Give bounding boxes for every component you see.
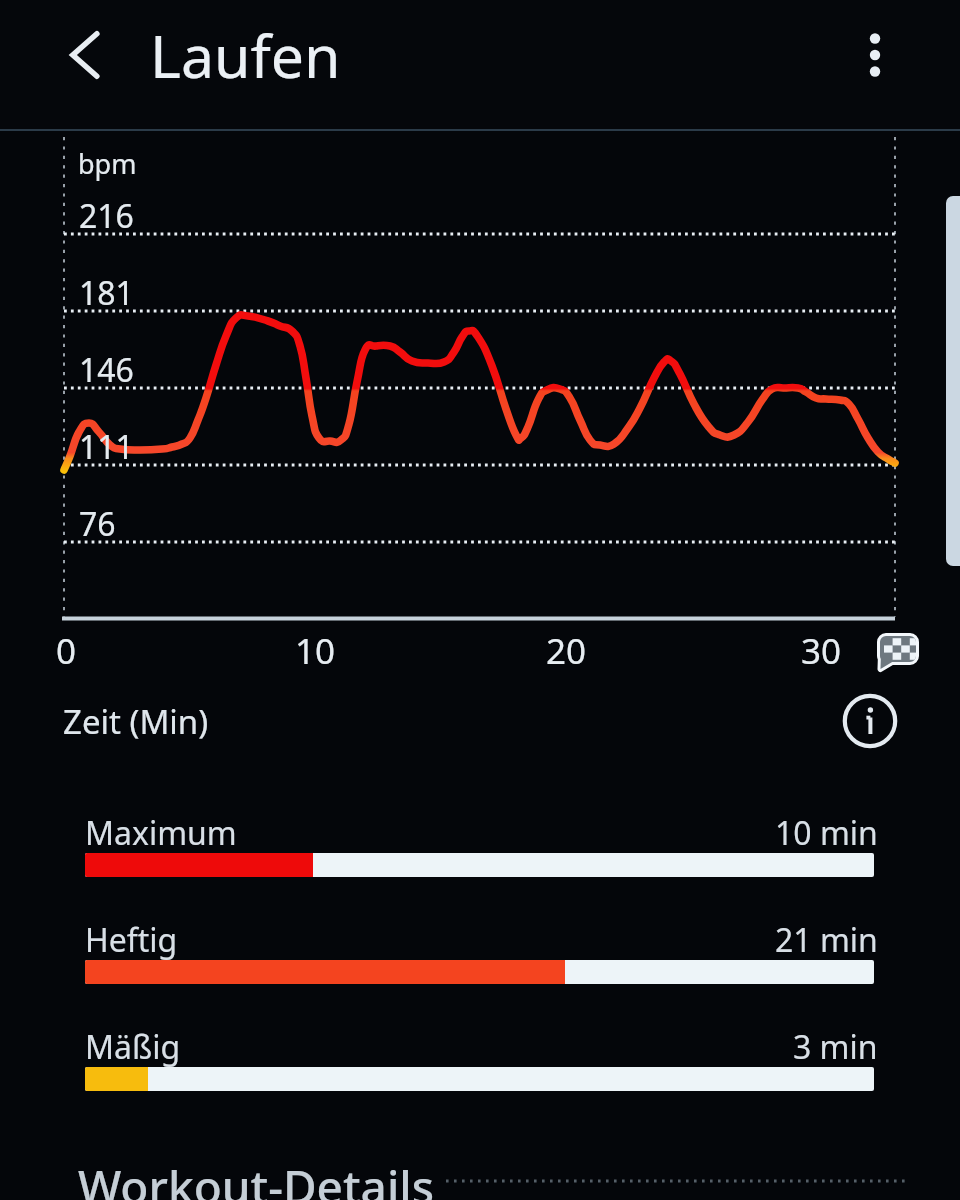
staticText: 20 [546,627,587,675]
button[interactable]: Info [838,689,902,753]
staticText: 216 [79,194,134,238]
button[interactable]: Finish [873,628,923,678]
staticText: bpm [78,145,137,182]
staticText: 30 [801,627,842,675]
staticText: 181 [79,271,134,315]
staticText: 111 [79,425,134,469]
staticText: 10 [295,627,336,675]
staticText: Laufen [150,15,341,95]
button[interactable]: More options [839,19,911,91]
staticText: Workout-Details [78,1155,435,1200]
staticText: 0 [56,627,77,675]
button[interactable]: Back [48,19,120,91]
button[interactable]: Maximum [85,807,874,881]
staticText: Maximum [85,811,237,855]
staticText: 10 min [775,811,878,855]
button[interactable]: Heftig [85,914,874,988]
staticText: Zeit (Min) [63,699,209,744]
staticText: 3 min [793,1025,878,1069]
button[interactable]: Mäßig [85,1021,874,1095]
staticText: 146 [79,348,134,392]
staticText: 76 [79,502,116,546]
staticText: Heftig [85,918,178,962]
staticText: 21 min [775,918,878,962]
staticText: Mäßig [85,1025,181,1069]
